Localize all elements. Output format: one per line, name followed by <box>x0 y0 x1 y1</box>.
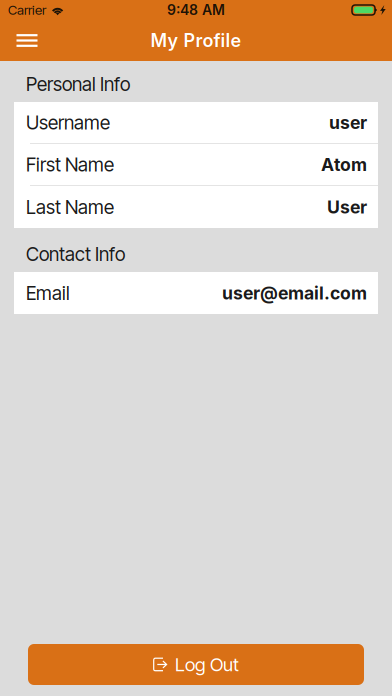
staticText: Last Name <box>26 195 114 218</box>
staticText: Personal Info <box>26 72 130 95</box>
button[interactable]: Username <box>14 102 378 144</box>
button[interactable]: Menu <box>0 20 54 61</box>
staticText: user <box>329 112 367 133</box>
staticText: user@email.com <box>222 282 367 304</box>
button[interactable]: Last Name <box>14 186 378 228</box>
staticText: 9:48 AM <box>167 1 225 18</box>
staticText: User <box>327 196 367 218</box>
staticText: Carrier <box>8 2 46 18</box>
staticText: Log Out <box>175 653 239 676</box>
button[interactable]: Email <box>14 272 378 314</box>
staticText: First Name <box>26 153 114 176</box>
staticText: Atom <box>321 154 367 175</box>
button[interactable]: First Name <box>14 144 378 186</box>
staticText: Username <box>26 111 110 134</box>
staticText: My Profile <box>150 30 241 51</box>
button[interactable]: Log Out <box>28 644 364 685</box>
staticText: Contact Info <box>26 242 125 265</box>
staticText: Email <box>26 281 70 304</box>
